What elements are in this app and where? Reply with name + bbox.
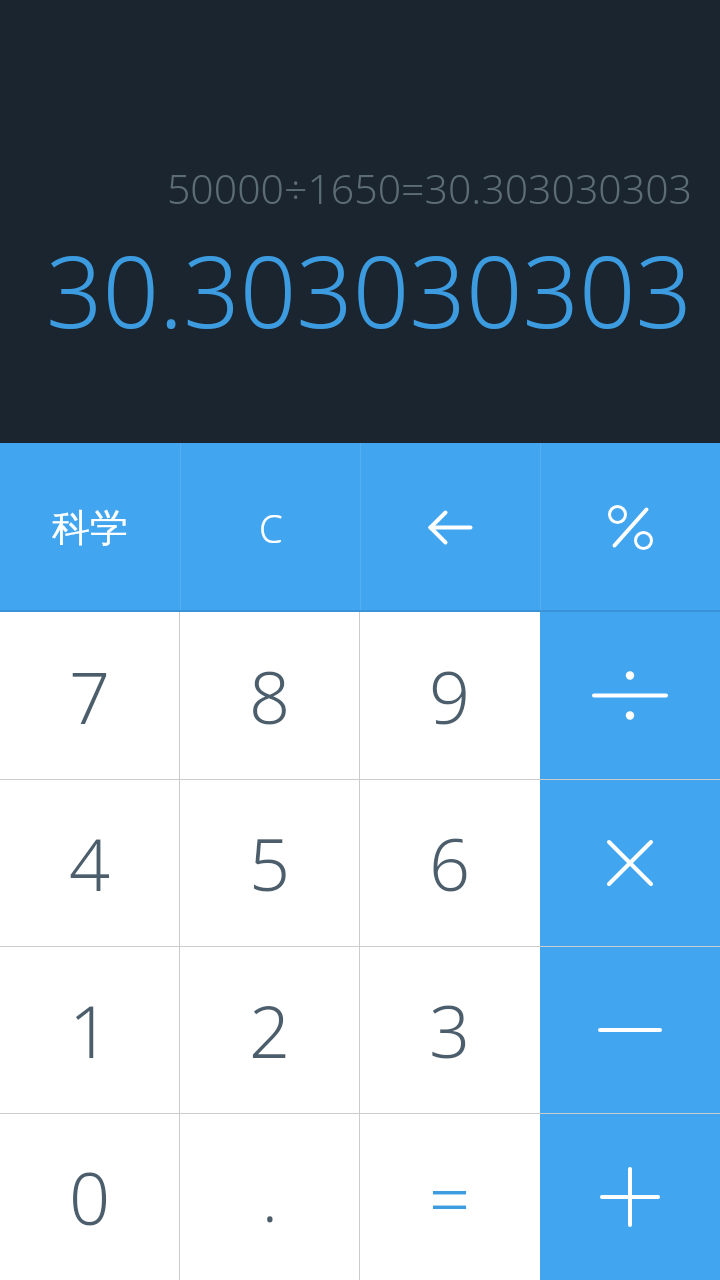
button[interactable]: Minus <box>540 947 720 1113</box>
button[interactable]: Multiply <box>540 780 720 946</box>
staticText: 0 <box>69 1148 111 1246</box>
button[interactable]: 9 <box>360 612 540 779</box>
button[interactable]: 5 <box>180 780 359 946</box>
button[interactable]: 1 <box>0 947 179 1113</box>
button[interactable]: Plus <box>540 1114 720 1280</box>
button[interactable]: C <box>181 443 360 612</box>
staticText: 3 <box>429 981 471 1079</box>
staticText: 8 <box>249 647 291 745</box>
staticText: 9 <box>429 647 471 745</box>
staticText: . <box>262 1154 278 1241</box>
staticText: 6 <box>429 814 471 912</box>
staticText: = <box>429 1148 471 1246</box>
staticText: 7 <box>69 647 111 745</box>
button[interactable]: . <box>180 1114 359 1280</box>
button[interactable]: 6 <box>360 780 540 946</box>
staticText: 5 <box>249 814 291 912</box>
staticText: 50000÷1650=30.303030303 <box>166 160 692 216</box>
button[interactable]: 0 <box>0 1114 179 1280</box>
button[interactable]: = <box>360 1114 540 1280</box>
button[interactable]: Backspace <box>361 443 540 612</box>
button[interactable]: 4 <box>0 780 179 946</box>
button[interactable]: 科学 <box>0 443 180 612</box>
button[interactable]: Divide <box>540 612 720 779</box>
staticText: 4 <box>69 814 111 912</box>
button[interactable]: 8 <box>180 612 359 779</box>
button[interactable]: 2 <box>180 947 359 1113</box>
staticText: C <box>259 502 283 554</box>
button[interactable]: 7 <box>0 612 179 779</box>
staticText: 1 <box>69 981 111 1079</box>
staticText: 30.303030303 <box>46 222 692 357</box>
button[interactable]: 3 <box>360 947 540 1113</box>
staticText: 科学 <box>52 504 128 552</box>
staticText: 2 <box>249 981 291 1079</box>
button[interactable]: Percent <box>541 443 720 612</box>
